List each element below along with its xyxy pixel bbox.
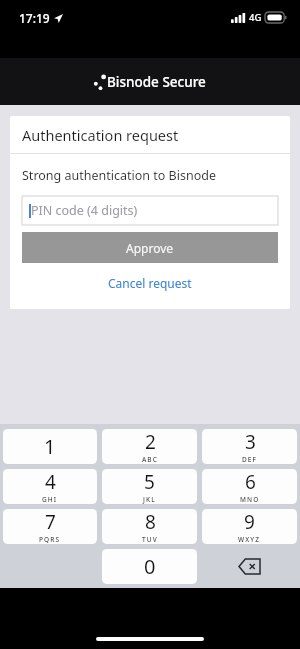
staticText: 1 xyxy=(44,433,56,460)
staticText: Strong authentication to Bisnode xyxy=(22,167,216,184)
staticText: Cancel request xyxy=(108,275,192,291)
staticText: 4G xyxy=(249,11,262,24)
staticText: 0 xyxy=(144,553,156,580)
staticText: GHI xyxy=(42,495,58,504)
staticText: 3 xyxy=(245,429,256,455)
button[interactable]: 7 xyxy=(3,509,97,544)
staticText: JKL xyxy=(143,495,156,504)
staticText: DEF xyxy=(242,455,258,464)
staticText: 5 xyxy=(144,469,155,495)
staticText: 8 xyxy=(145,509,156,535)
staticText: Bisnode Secure xyxy=(107,73,206,91)
staticText: 7 xyxy=(45,509,56,535)
staticText: 2 xyxy=(145,429,156,455)
staticText: 9 xyxy=(244,509,255,535)
button[interactable]: 8 xyxy=(102,509,197,544)
button[interactable]: 2 xyxy=(102,429,197,464)
staticText: 17:19 xyxy=(19,10,50,26)
staticText: TUV xyxy=(142,535,158,544)
staticText: PIN code (4 digits) xyxy=(31,202,138,219)
button[interactable]: 1 xyxy=(3,429,97,464)
button[interactable]: Approve xyxy=(22,232,278,263)
staticText: Authentication request xyxy=(22,125,179,145)
staticText: ABC xyxy=(142,455,158,464)
button[interactable]: 4 xyxy=(3,469,97,504)
staticText: Approve xyxy=(126,240,174,256)
button[interactable]: 3 xyxy=(202,429,297,464)
staticText: WXYZ xyxy=(238,535,261,544)
button[interactable]: 5 xyxy=(102,469,197,504)
staticText: PQRS xyxy=(39,535,61,544)
button[interactable]: 6 xyxy=(202,469,297,504)
button[interactable]: PIN code (4 digits) xyxy=(22,196,278,225)
button[interactable]: 0 xyxy=(102,549,197,584)
button[interactable]: Cancel request xyxy=(102,273,198,293)
button[interactable]: 9 xyxy=(202,509,297,544)
staticText: 6 xyxy=(245,469,256,495)
staticText: 4 xyxy=(45,469,56,495)
button[interactable]: Delete xyxy=(202,549,297,584)
staticText: MNO xyxy=(240,495,260,504)
